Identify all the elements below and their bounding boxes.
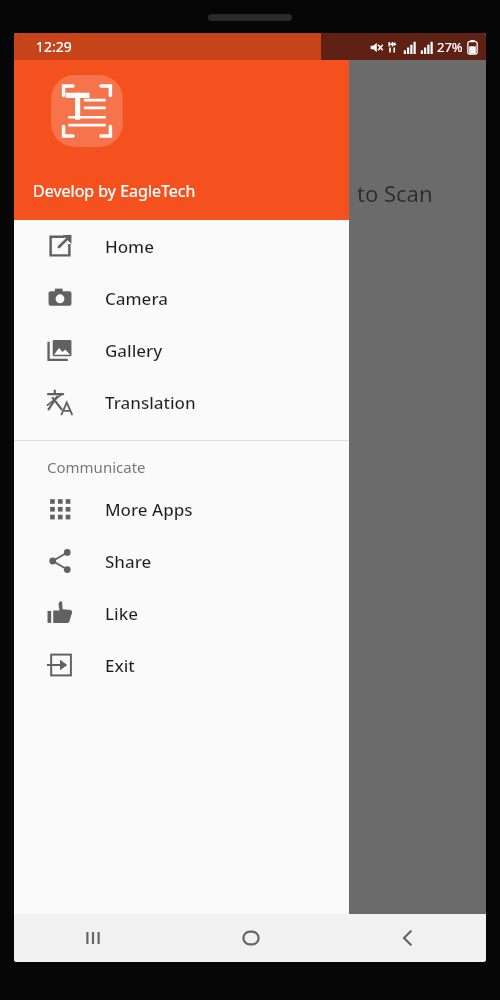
button[interactable]: Camera <box>14 272 349 324</box>
staticText: More Apps <box>105 498 193 521</box>
staticText: Translation <box>105 391 196 414</box>
staticText: Share <box>105 550 152 573</box>
staticText: 27% <box>437 38 463 56</box>
staticText: Communicate <box>47 457 146 477</box>
staticText: Like <box>105 602 138 625</box>
button[interactable]: Recents <box>14 914 172 962</box>
button[interactable]: Share <box>14 535 349 587</box>
staticText: to Scan <box>357 178 433 208</box>
button[interactable]: Back <box>329 914 486 962</box>
button[interactable]: Home <box>14 220 349 272</box>
button[interactable]: Like <box>14 587 349 639</box>
button[interactable]: Translation <box>14 376 349 428</box>
staticText: Camera <box>105 287 168 310</box>
staticText: Home <box>105 235 154 258</box>
staticText: Gallery <box>105 339 163 362</box>
staticText: Develop by EagleTech <box>33 180 196 202</box>
staticText: 12:29 <box>36 37 72 56</box>
button[interactable]: Home <box>172 914 329 962</box>
button[interactable]: More Apps <box>14 483 349 535</box>
button[interactable]: Gallery <box>14 324 349 376</box>
staticText: Exit <box>105 654 135 677</box>
button[interactable]: Exit <box>14 639 349 691</box>
